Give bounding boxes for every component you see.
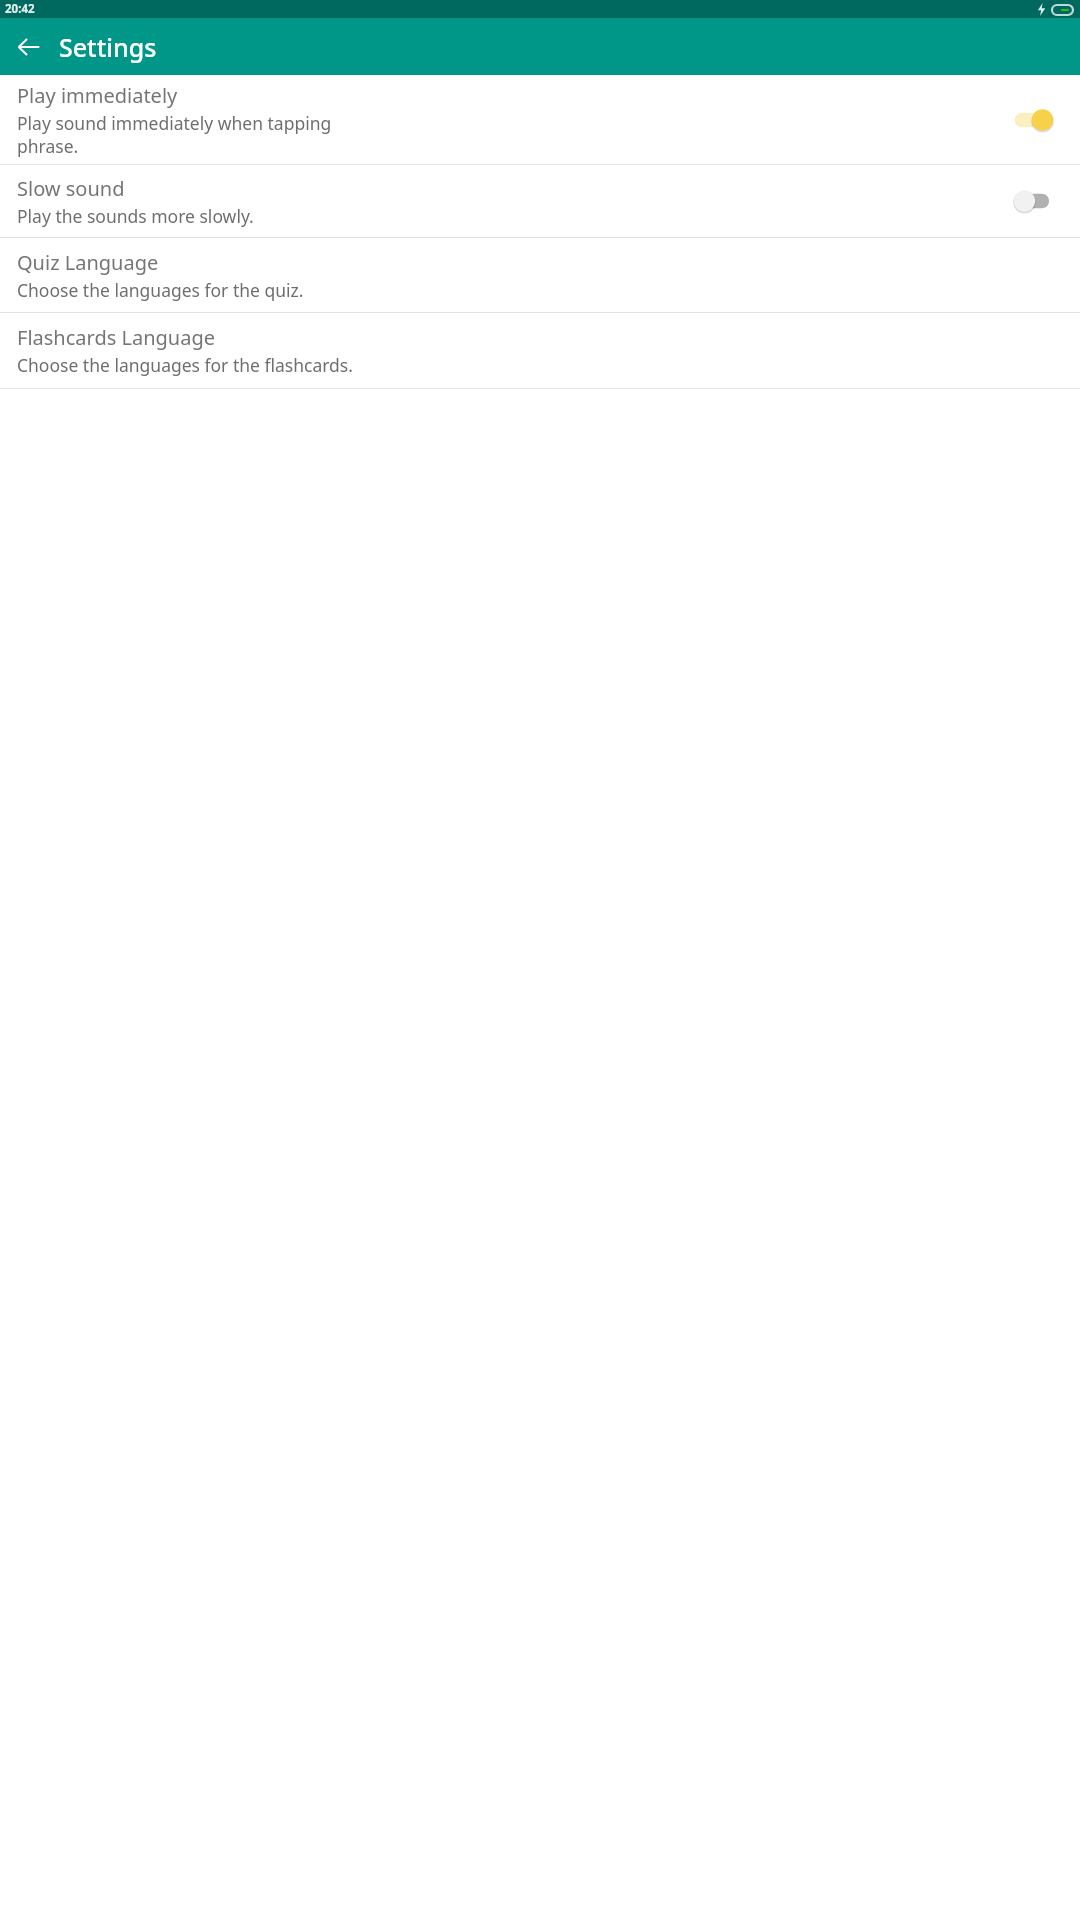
staticText: Choose the languages for the flashcards. bbox=[17, 353, 353, 377]
button[interactable]: Toggle, off bbox=[1013, 188, 1054, 214]
button[interactable]: Slow sound bbox=[0, 165, 1080, 237]
button[interactable]: Toggle, on bbox=[1013, 107, 1054, 133]
staticText: 20:42 bbox=[5, 1, 35, 17]
staticText: Choose the languages for the quiz. bbox=[17, 278, 304, 302]
staticText: Settings bbox=[59, 30, 157, 64]
staticText: Play sound immediately when tapping phra… bbox=[17, 111, 332, 158]
button[interactable]: Play immediately bbox=[0, 75, 1080, 164]
button[interactable]: Quiz Language bbox=[0, 238, 1080, 312]
staticText: Play immediately bbox=[17, 82, 178, 109]
button[interactable]: Flashcards Language bbox=[0, 313, 1080, 388]
staticText: Flashcards Language bbox=[17, 324, 215, 351]
button[interactable]: Back bbox=[5, 23, 53, 71]
staticText: Slow sound bbox=[17, 175, 125, 202]
staticText: Play the sounds more slowly. bbox=[17, 204, 254, 228]
staticText: Quiz Language bbox=[17, 249, 159, 276]
